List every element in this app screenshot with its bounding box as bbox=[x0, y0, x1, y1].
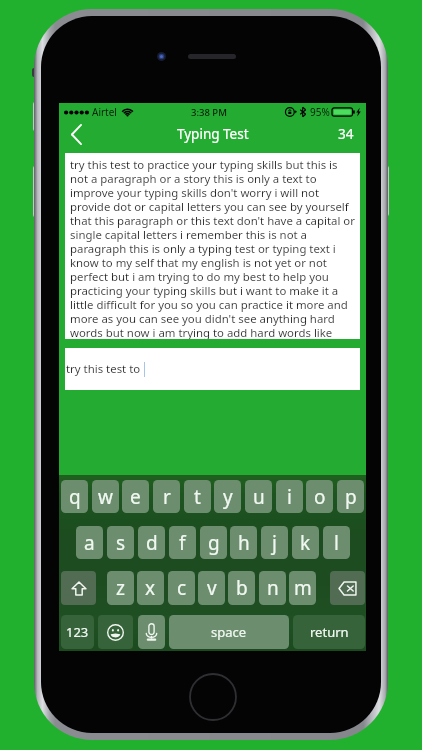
staticText: q bbox=[69, 484, 81, 510]
button[interactable]: c bbox=[168, 571, 195, 605]
button[interactable]: m bbox=[289, 571, 316, 605]
staticText: 34 bbox=[338, 125, 354, 143]
button[interactable]: p bbox=[337, 480, 364, 513]
button[interactable]: z bbox=[107, 571, 134, 605]
staticText: g bbox=[208, 530, 220, 556]
button[interactable]: y bbox=[214, 480, 241, 513]
staticText: j bbox=[272, 530, 277, 556]
staticText: k bbox=[300, 530, 311, 556]
staticText: o bbox=[314, 484, 326, 510]
staticText: t bbox=[194, 484, 201, 510]
staticText: m bbox=[294, 575, 312, 601]
staticText: z bbox=[116, 575, 125, 601]
staticText: y bbox=[223, 484, 233, 510]
staticText: w bbox=[98, 484, 113, 510]
button[interactable]: Home bbox=[189, 673, 237, 721]
button[interactable]: Back bbox=[59, 121, 93, 147]
staticText: Airtel bbox=[92, 105, 117, 119]
staticText: try this test to bbox=[66, 361, 141, 377]
button[interactable]: space bbox=[169, 615, 289, 649]
staticText: d bbox=[146, 530, 158, 556]
button[interactable]: r bbox=[153, 480, 180, 513]
button[interactable]: w bbox=[92, 480, 119, 513]
staticText: x bbox=[145, 575, 156, 601]
button[interactable]: v bbox=[198, 571, 225, 605]
button[interactable]: i bbox=[276, 480, 303, 513]
button[interactable]: h bbox=[230, 526, 257, 559]
button[interactable]: b bbox=[228, 571, 255, 605]
button[interactable]: q bbox=[61, 480, 88, 513]
staticText: r bbox=[163, 484, 171, 510]
staticText: f bbox=[179, 530, 186, 556]
button[interactable]: o bbox=[306, 480, 333, 513]
button[interactable]: t bbox=[184, 480, 211, 513]
button[interactable]: Voice input bbox=[138, 615, 165, 649]
button[interactable]: k bbox=[292, 526, 319, 559]
button[interactable]: f bbox=[169, 526, 196, 559]
button[interactable]: j bbox=[261, 526, 288, 559]
staticText: i bbox=[287, 484, 292, 510]
staticText: space bbox=[211, 623, 247, 641]
staticText: e bbox=[130, 484, 141, 510]
staticText: n bbox=[267, 575, 279, 601]
button[interactable]: Shift bbox=[61, 571, 96, 605]
button[interactable]: return bbox=[293, 615, 365, 649]
button[interactable]: Emoji bbox=[98, 615, 133, 649]
button[interactable]: x bbox=[137, 571, 164, 605]
staticText: return bbox=[310, 623, 349, 641]
button[interactable]: Backspace bbox=[330, 571, 365, 605]
staticText: v bbox=[207, 575, 217, 601]
staticText: h bbox=[238, 530, 250, 556]
staticText: l bbox=[334, 530, 339, 556]
button[interactable]: n bbox=[259, 571, 286, 605]
staticText: s bbox=[116, 530, 126, 556]
button[interactable]: d bbox=[138, 526, 165, 559]
button[interactable]: 123 bbox=[61, 615, 94, 649]
staticText: Typing Test bbox=[177, 125, 249, 143]
staticText: a bbox=[84, 530, 95, 556]
staticText: 123 bbox=[66, 623, 89, 641]
staticText: 3:38 PM bbox=[191, 106, 227, 119]
staticText: c bbox=[177, 575, 187, 601]
button[interactable]: a bbox=[76, 526, 103, 559]
button[interactable]: e bbox=[122, 480, 149, 513]
staticText: b bbox=[236, 575, 248, 601]
staticText: u bbox=[253, 484, 265, 510]
button[interactable]: g bbox=[200, 526, 227, 559]
staticText: p bbox=[345, 484, 357, 510]
button[interactable]: s bbox=[107, 526, 134, 559]
button[interactable]: u bbox=[245, 480, 272, 513]
staticText: 95% bbox=[310, 105, 330, 119]
button[interactable]: l bbox=[323, 526, 350, 559]
staticText: try this test to practice your typing sk… bbox=[70, 157, 358, 339]
